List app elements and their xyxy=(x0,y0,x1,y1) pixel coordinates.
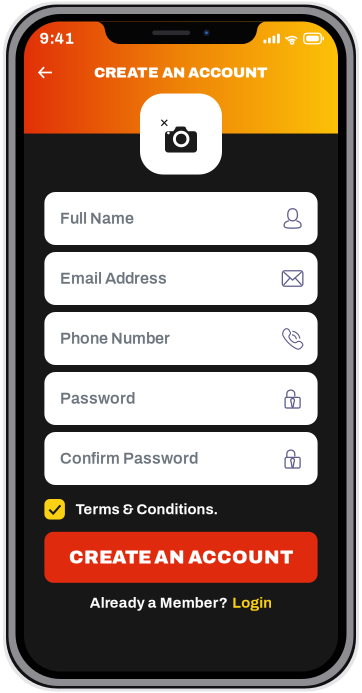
staticText: Terms & Conditions. xyxy=(75,501,218,517)
staticText: 9:41 xyxy=(39,30,74,47)
staticText: Already a Member? xyxy=(90,595,228,611)
staticText: CREATE AN ACCOUNT xyxy=(94,64,268,80)
staticText: Email Address xyxy=(60,270,167,287)
button[interactable]: Phone Number xyxy=(44,312,318,365)
button[interactable]: Password xyxy=(44,372,318,425)
staticText: Full Name xyxy=(60,210,134,227)
button[interactable]: Confirm Password xyxy=(44,432,318,485)
button[interactable]: Login xyxy=(232,595,272,611)
staticText: CREATE AN ACCOUNT xyxy=(69,547,293,567)
staticText: Phone Number xyxy=(60,330,170,347)
button[interactable]: Back xyxy=(30,57,60,87)
staticText: Confirm Password xyxy=(60,450,198,467)
staticText: Password xyxy=(60,390,135,407)
button[interactable]: CREATE AN ACCOUNT xyxy=(44,532,318,583)
staticText: Login xyxy=(232,595,272,611)
button[interactable]: Full Name xyxy=(44,192,318,245)
button[interactable]: Email Address xyxy=(44,252,318,305)
button[interactable]: Terms & Conditions. xyxy=(44,499,318,519)
